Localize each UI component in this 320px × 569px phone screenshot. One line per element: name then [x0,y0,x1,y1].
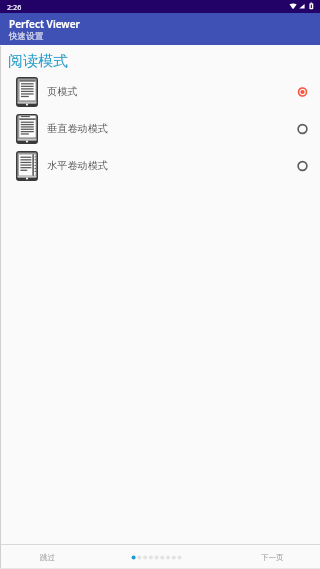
button[interactable]: 水平卷动模式 [0,148,320,185]
staticText: 2:26 [7,2,22,12]
staticText: 水平卷动模式 [47,159,109,172]
other: Status icons [288,0,316,13]
button[interactable]: 页模式 [0,74,320,111]
staticText: 下一页 [261,553,284,562]
other: 页模式 [295,85,309,99]
other: 垂直卷动模式 [295,122,309,136]
staticText: 垂直卷动模式 [47,122,109,135]
other: 水平卷动模式 [295,159,309,173]
staticText: 阅读模式 [8,52,68,71]
button[interactable]: 跳过 [0,545,95,569]
button[interactable]: 下一页 [225,545,320,569]
staticText: 跳过 [40,553,55,562]
staticText: 页模式 [47,85,78,98]
staticText: Perfect Viewer [9,17,80,31]
staticText: 快速设置 [9,31,44,42]
button[interactable]: 垂直卷动模式 [0,111,320,148]
